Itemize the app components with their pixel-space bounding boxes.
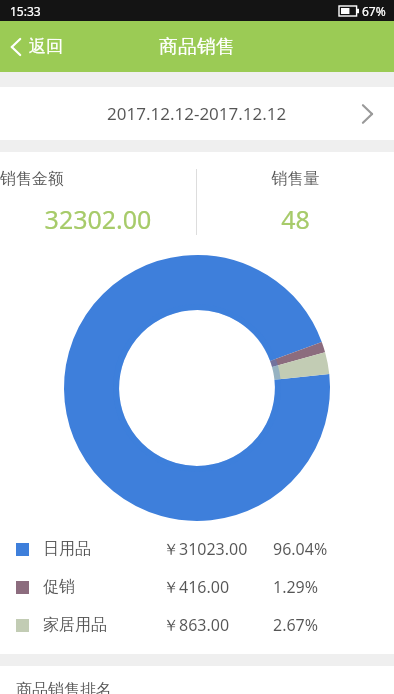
staticText: ￥31023.00 [163, 538, 273, 560]
staticText: 1.29% [273, 576, 319, 598]
button[interactable]: 2017.12.12-2017.12.12 [0, 87, 394, 140]
staticText: 日用品 [43, 539, 163, 559]
staticText: ￥863.00 [163, 614, 273, 636]
staticText: 商品销售 [159, 35, 235, 59]
staticText: 返回 [29, 36, 63, 57]
staticText: 销售量 [197, 169, 394, 189]
staticText: 促销 [43, 577, 163, 597]
button[interactable]: 返回 [0, 21, 77, 72]
staticText: 96.04% [273, 538, 328, 560]
staticText: 商品销售排名 [16, 680, 112, 694]
staticText: 家居用品 [43, 615, 163, 635]
staticText: 15:33 [10, 3, 41, 19]
staticText: 67% [362, 3, 386, 19]
staticText: ￥416.00 [163, 576, 273, 598]
button[interactable]: 销售金额 [0, 169, 196, 236]
button[interactable]: 家居用品 [0, 606, 394, 644]
button[interactable]: 商品销售排名 [0, 666, 394, 694]
button[interactable]: 促销 [0, 568, 394, 606]
button[interactable]: 销售量 [197, 169, 394, 236]
other: Sales breakdown donut chart [64, 255, 330, 521]
other: Next date range [361, 103, 374, 125]
staticText: 48 [197, 202, 394, 236]
staticText: 2017.12.12-2017.12.12 [107, 102, 287, 125]
staticText: 32302.00 [0, 202, 196, 236]
button[interactable]: 日用品 [0, 530, 394, 568]
staticText: 2.67% [273, 614, 319, 636]
staticText: 销售金额 [0, 169, 196, 189]
